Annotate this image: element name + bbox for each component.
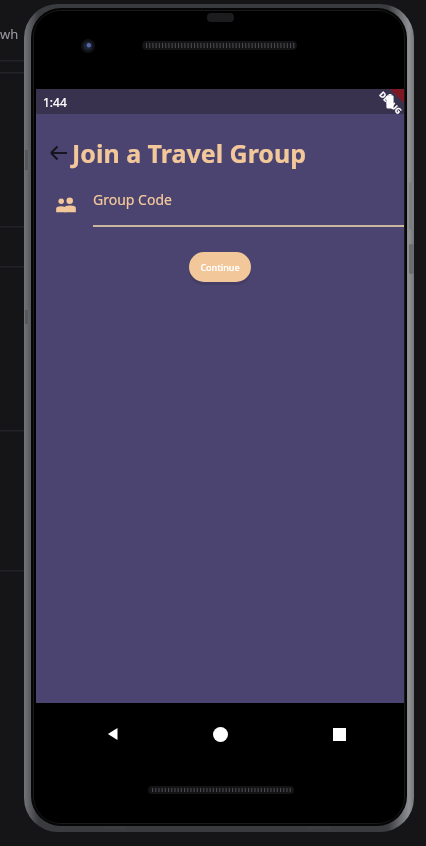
staticText: Join a Travel Group [72, 136, 307, 170]
button[interactable]: Recent apps [316, 711, 362, 757]
staticText: DEBUG [377, 89, 405, 116]
staticText: Group Code [93, 190, 172, 209]
button[interactable]: Home [197, 711, 243, 757]
button[interactable]: Continue [189, 252, 251, 282]
button[interactable]: Back [90, 711, 136, 757]
staticText: wh [0, 25, 19, 43]
staticText: 1:44 [43, 94, 67, 110]
button[interactable]: Group Code [93, 190, 404, 227]
staticText: Continue [200, 261, 240, 273]
button[interactable]: Back [46, 140, 72, 166]
